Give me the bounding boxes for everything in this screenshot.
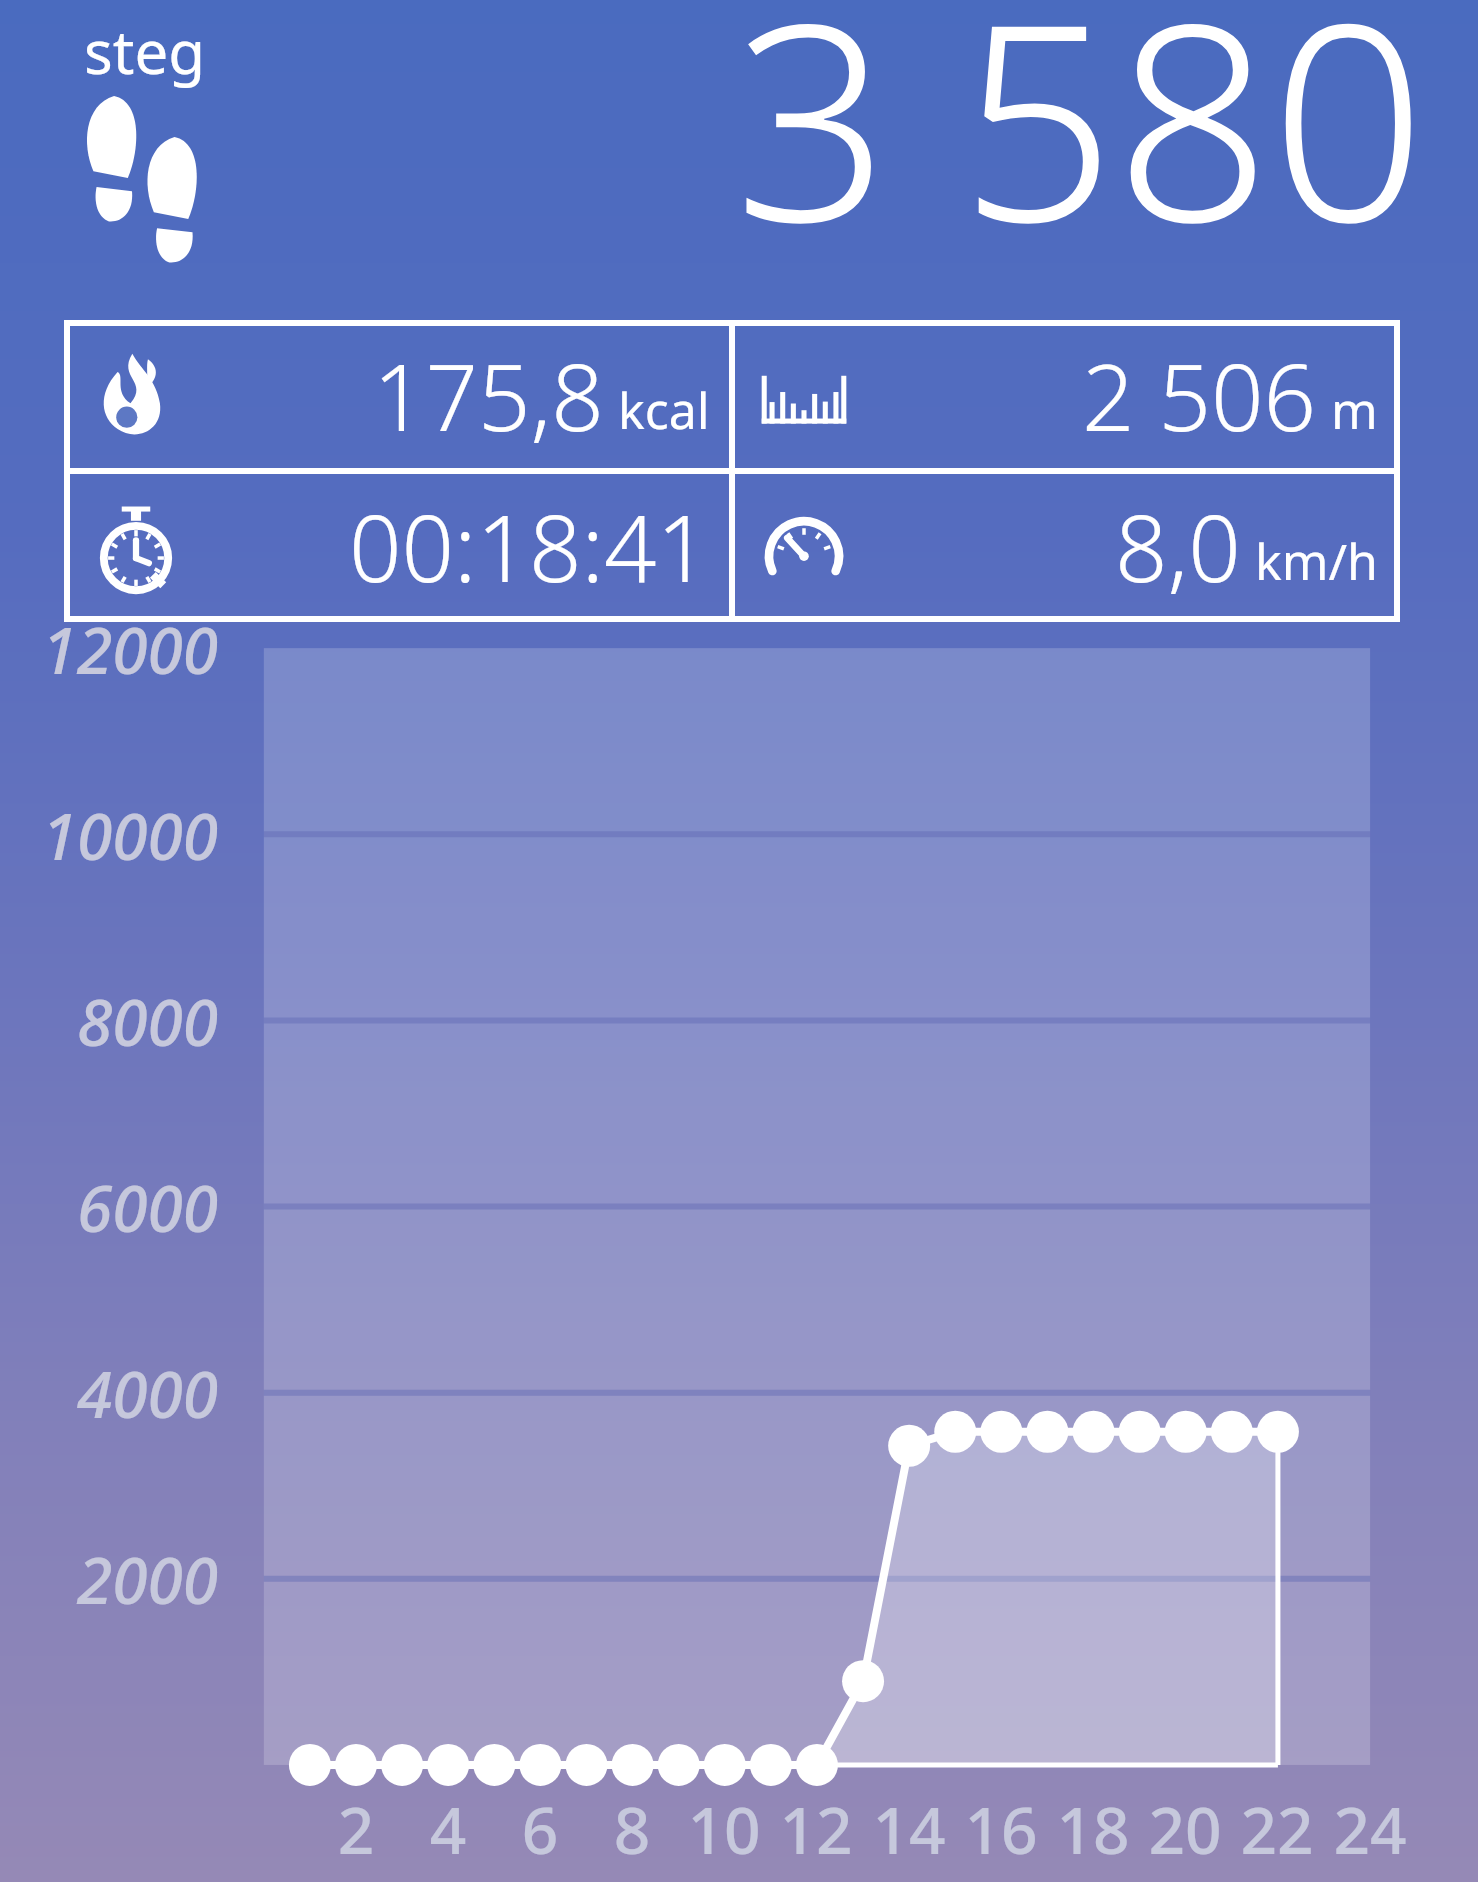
staticText: 10000: [0, 792, 218, 879]
button[interactable]: Average speed: [732, 471, 1400, 622]
staticText: 8000: [0, 978, 218, 1065]
staticText: 2 506: [1082, 333, 1317, 458]
staticText: 22: [1227, 1786, 1327, 1873]
staticText: 00:18:41: [349, 484, 710, 609]
staticText: 175,8: [373, 333, 604, 458]
staticText: 6000: [0, 1164, 218, 1251]
staticText: m: [1331, 376, 1378, 444]
button[interactable]: Calories burned: [64, 320, 732, 471]
staticText: 8: [582, 1786, 682, 1873]
button[interactable]: Steps today: [84, 10, 210, 248]
staticText: 2: [306, 1786, 406, 1873]
staticText: 4000: [0, 1350, 218, 1437]
button[interactable]: Distance: [732, 320, 1400, 471]
staticText: 18: [1043, 1786, 1143, 1873]
staticText: 12: [766, 1786, 866, 1873]
staticText: 3 580: [734, 0, 1426, 300]
staticText: 8,0: [1115, 484, 1241, 609]
staticText: 16: [951, 1786, 1051, 1873]
staticText: kcal: [618, 376, 710, 444]
staticText: 12000: [0, 606, 218, 693]
staticText: 24: [1320, 1786, 1420, 1873]
staticText: km/h: [1255, 527, 1378, 595]
staticText: 14: [859, 1786, 959, 1873]
staticText: 10: [674, 1786, 774, 1873]
button[interactable]: Duration: [64, 471, 732, 622]
staticText: steg: [84, 10, 206, 92]
staticText: 20: [1135, 1786, 1235, 1873]
staticText: 4: [398, 1786, 498, 1873]
staticText: 2000: [0, 1536, 218, 1623]
staticText: 6: [490, 1786, 590, 1873]
